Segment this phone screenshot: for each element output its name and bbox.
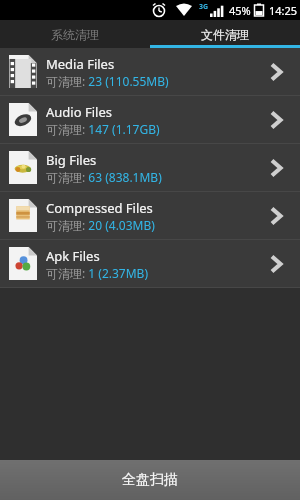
- staticText: 全盘扫描: [122, 471, 178, 489]
- staticText: 可清理: 23 (110.55MB): [46, 73, 169, 89]
- button[interactable]: Big Files: [0, 144, 300, 192]
- staticText: 系统清理: [51, 27, 99, 42]
- button[interactable]: 文件清理: [150, 20, 300, 48]
- staticText: 可清理: 20 (4.03MB): [46, 217, 155, 233]
- staticText: 文件清理: [201, 27, 249, 42]
- staticText: Media Files: [46, 55, 115, 73]
- staticText: 3G: [199, 2, 209, 12]
- staticText: 可清理: 147 (1.17GB): [46, 121, 160, 137]
- button[interactable]: Apk Files: [0, 240, 300, 288]
- staticText: 14:25: [269, 3, 298, 18]
- button[interactable]: Audio Files: [0, 96, 300, 144]
- staticText: Compressed Files: [46, 199, 153, 217]
- staticText: Big Files: [46, 151, 97, 169]
- staticText: 可清理: 63 (838.1MB): [46, 169, 162, 185]
- button[interactable]: 全盘扫描: [0, 460, 300, 500]
- button[interactable]: Compressed Files: [0, 192, 300, 240]
- staticText: 可清理: 1 (2.37MB): [46, 265, 149, 281]
- staticText: Apk Files: [46, 247, 100, 265]
- button[interactable]: Media Files: [0, 48, 300, 96]
- staticText: Audio Files: [46, 103, 112, 121]
- button[interactable]: 系统清理: [0, 20, 150, 48]
- staticText: 45%: [229, 3, 251, 18]
